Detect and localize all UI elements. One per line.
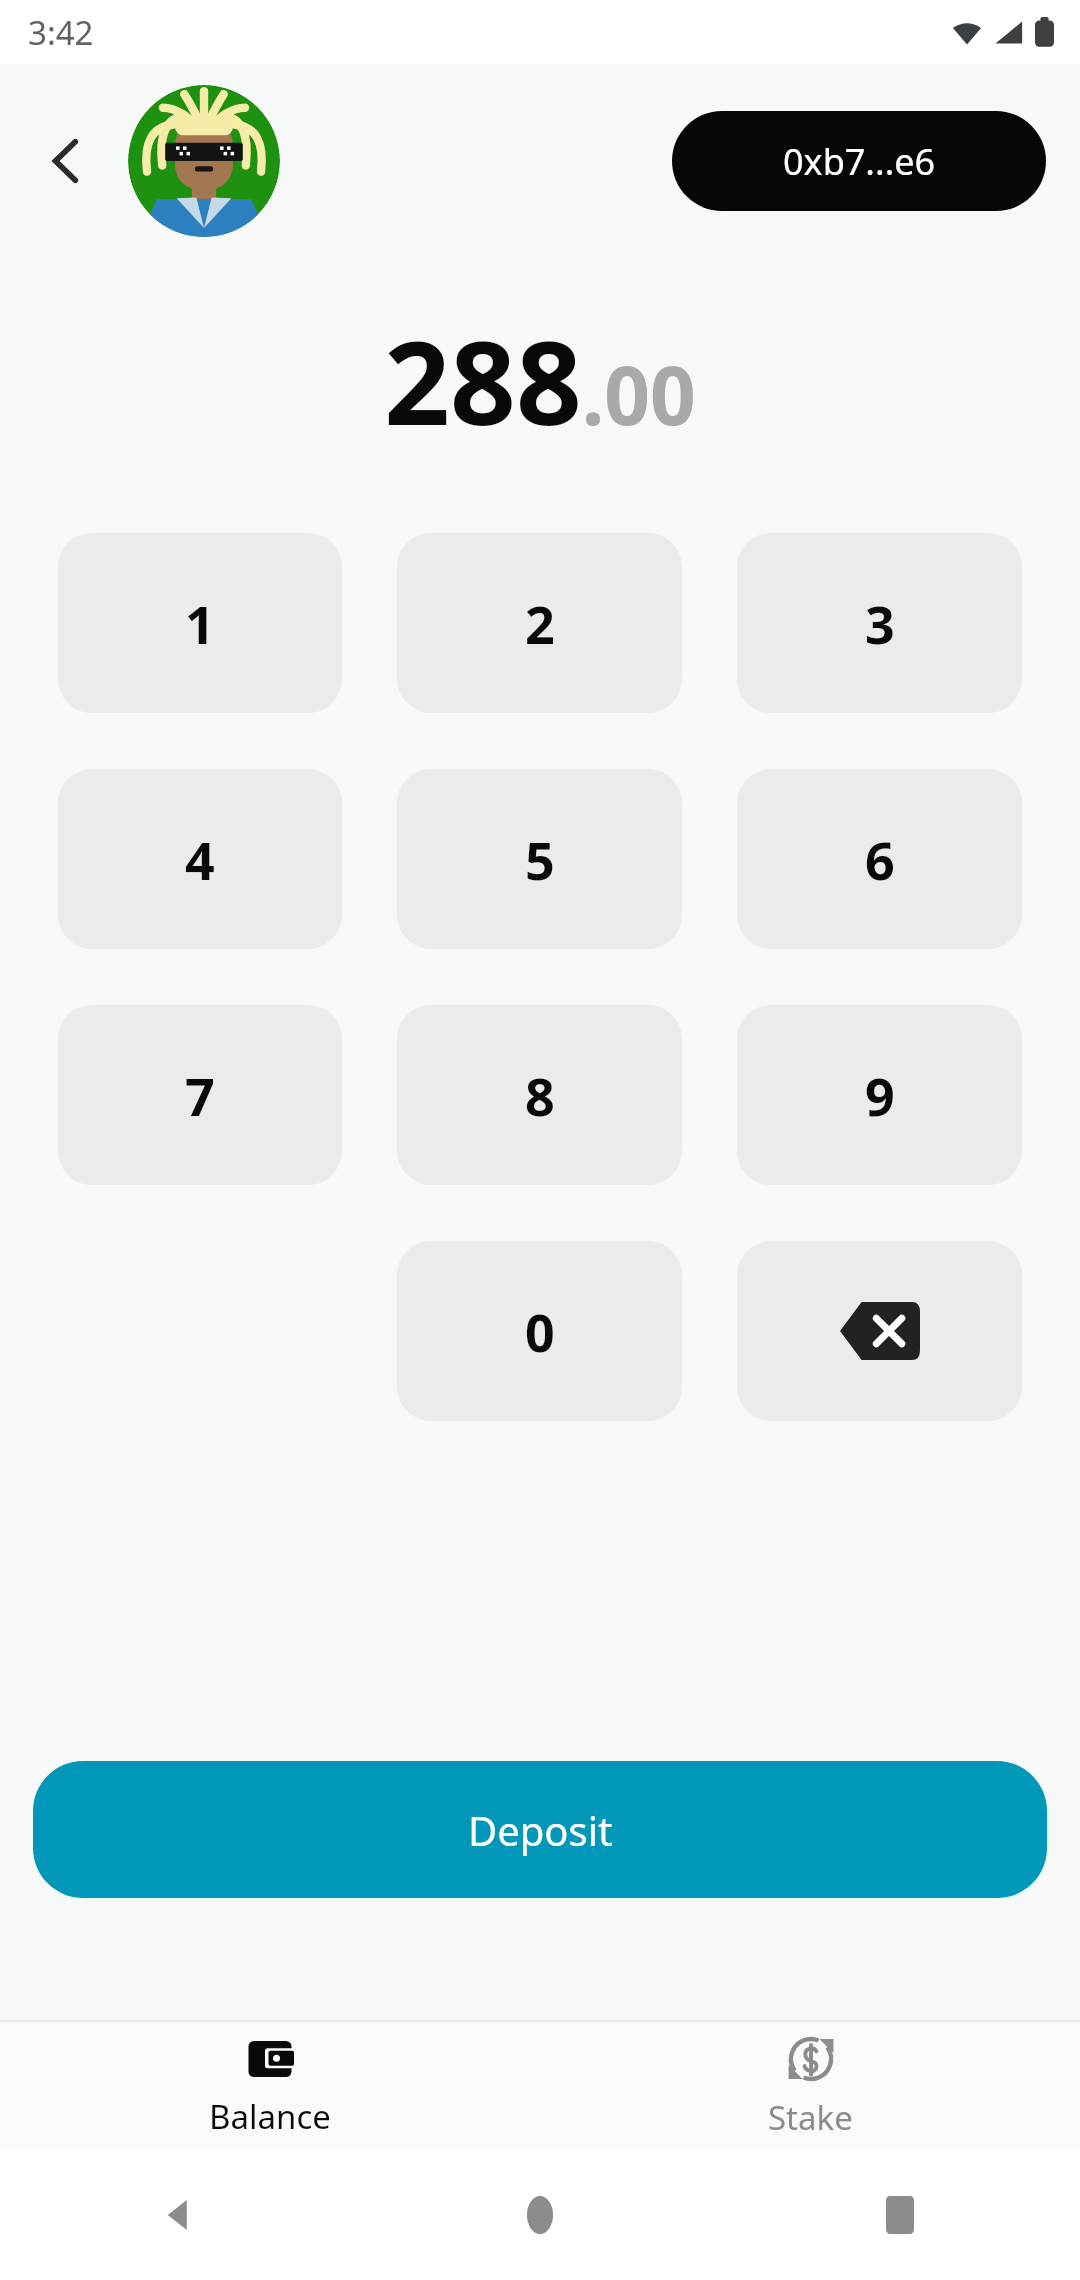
button[interactable]: Deposit	[33, 1761, 1047, 1898]
button[interactable]: 2	[397, 533, 682, 713]
staticText: 1	[185, 588, 215, 659]
button[interactable]: 5	[397, 769, 682, 949]
button[interactable]: 0	[397, 1241, 682, 1421]
button[interactable]: 1	[58, 533, 342, 713]
button[interactable]: 6	[737, 769, 1022, 949]
button[interactable]: Balance	[169, 2026, 371, 2147]
button[interactable]: Profile avatar	[128, 85, 280, 237]
staticText: 0xb7...e6	[783, 137, 936, 186]
button[interactable]: Stake	[728, 2025, 893, 2148]
button[interactable]: 9	[737, 1005, 1022, 1185]
staticText: Stake	[768, 2095, 853, 2140]
staticText: 3	[865, 588, 895, 659]
staticText: 8	[525, 1060, 555, 1131]
staticText: 7	[185, 1060, 215, 1131]
staticText: 5	[525, 824, 555, 895]
staticText: 0	[525, 1296, 555, 1367]
staticText: 4	[185, 824, 215, 895]
staticText: 2	[525, 588, 555, 659]
staticText: Deposit	[468, 1803, 613, 1857]
staticText: 288.00	[384, 302, 696, 459]
button[interactable]: 7	[58, 1005, 342, 1185]
staticText: Balance	[209, 2094, 331, 2139]
staticText: 6	[865, 824, 895, 895]
button[interactable]: 3	[737, 533, 1022, 713]
button[interactable]: 8	[397, 1005, 682, 1185]
button[interactable]: 0xb7...e6	[672, 111, 1046, 211]
button[interactable]: Backspace	[737, 1241, 1022, 1421]
staticText: 9	[865, 1060, 895, 1131]
staticText: 3:42	[28, 10, 94, 55]
button[interactable]: Back	[22, 115, 114, 207]
button[interactable]: 4	[58, 769, 342, 949]
